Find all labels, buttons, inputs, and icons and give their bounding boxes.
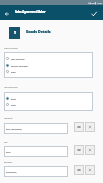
staticText: Purchase Agreement [11,65,28,67]
staticText: Sales Agreement Maker [15,10,46,14]
button[interactable]: Other [6,70,91,73]
button[interactable]: Back [2,9,12,19]
button[interactable]: Clear [85,145,95,155]
button[interactable]: Item 1 [4,146,68,157]
button[interactable]: Clear [85,165,95,175]
staticText: ✉ ▼ 32% ▌ 14:36 [88,2,102,4]
staticText: New Record [4,117,13,119]
button[interactable]: Purchase Agreement [6,64,91,67]
button[interactable]: Item 1 (Description) [4,123,68,134]
staticText: Goods [11,98,16,100]
staticText: 1 [14,31,16,35]
staticText: Item 1 [6,151,12,153]
staticText: [Description] [6,171,17,173]
staticText: Other [11,104,16,106]
button[interactable]: Clear [85,122,95,132]
staticText: Description [4,161,13,163]
button[interactable]: Keyboard [74,145,84,155]
staticText: Item 1 (Description) [6,128,22,130]
button[interactable]: Keyboard [74,122,84,132]
button[interactable]: Goods [6,97,91,100]
staticText: What is being sold? [4,86,18,88]
staticText: Goods Details [26,29,51,34]
staticText: Goods Details [26,29,51,34]
staticText: Sales Agreement [11,58,25,60]
staticText: Other [11,71,16,73]
button[interactable]: [Description] [4,166,68,177]
button[interactable]: Other [6,103,91,106]
staticText: Item [4,141,8,143]
staticText: Name of Document [4,47,18,49]
staticText: Goods Details [26,29,51,34]
button[interactable]: Sales Agreement [6,57,91,60]
button[interactable]: Keyboard [74,165,84,175]
button[interactable]: Save [88,8,100,20]
staticText: Sales Agreement Maker [15,10,46,14]
staticText: 1 [14,31,16,35]
